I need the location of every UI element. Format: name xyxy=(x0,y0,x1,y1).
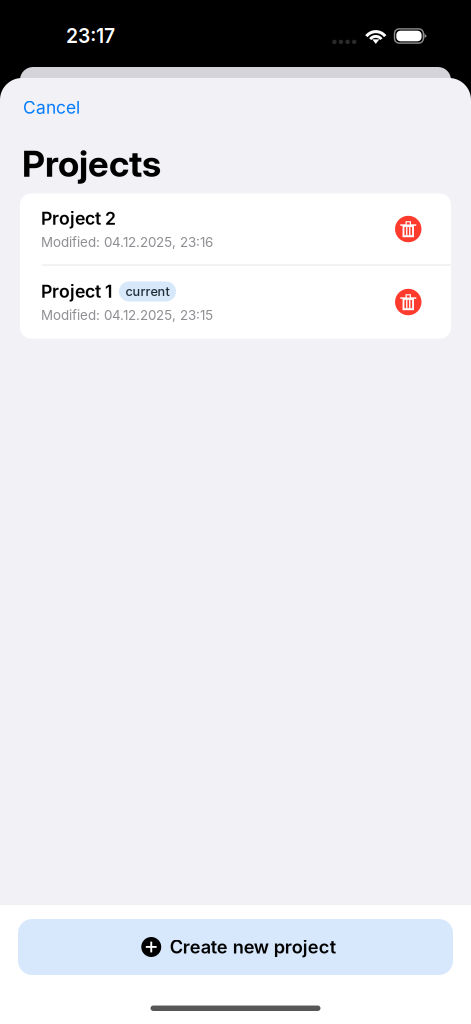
button[interactable]: Project 2 xyxy=(20,193,451,264)
staticText: Project 2 xyxy=(41,208,116,229)
staticText: Modified: 04.12.2025, 23:16 xyxy=(41,234,213,250)
button[interactable]: Cancel xyxy=(23,91,90,124)
staticText: Projects xyxy=(22,142,161,186)
button[interactable]: Project 1 xyxy=(20,265,451,338)
button[interactable]: Delete Project 2 xyxy=(395,216,421,242)
staticText: Cancel xyxy=(23,97,80,118)
button[interactable]: Create new project xyxy=(18,919,453,975)
button[interactable]: Delete Project 1 xyxy=(395,289,421,315)
staticText: current xyxy=(125,284,169,299)
staticText: Project 1 xyxy=(41,281,112,302)
staticText: Modified: 04.12.2025, 23:15 xyxy=(41,307,213,323)
staticText: 23:17 xyxy=(66,24,115,48)
staticText: Create new project xyxy=(170,936,336,958)
